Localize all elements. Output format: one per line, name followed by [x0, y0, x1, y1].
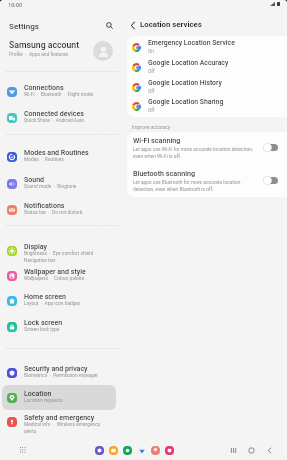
button[interactable]: Home screen	[2, 288, 116, 313]
button[interactable]: Toggle	[263, 143, 278, 152]
staticText: Medical info · Wireless emergency alerts	[24, 422, 100, 434]
staticText: Lock screen	[24, 318, 63, 326]
button[interactable]: Search	[101, 17, 117, 33]
staticText: Wallpaper and style	[24, 267, 86, 275]
button[interactable]: Notifications	[2, 197, 116, 222]
staticText: Emergency Location Service	[148, 39, 235, 47]
staticText: Off	[148, 69, 155, 75]
staticText: Status bar · Do not disturb	[24, 210, 83, 216]
staticText: Modes and Routines	[24, 148, 89, 156]
staticText: Brightness · Eye comfort shield · Naviga…	[24, 251, 97, 263]
staticText: Wi-Fi · Bluetooth · Flight mode	[24, 92, 94, 98]
staticText: Settings	[9, 21, 39, 30]
staticText: Display	[24, 242, 48, 250]
button[interactable]: Samsung account	[0, 36, 118, 62]
button[interactable]: Google Location History	[127, 76, 287, 96]
button[interactable]: Connections	[2, 79, 116, 104]
staticText: Security and privacy	[24, 364, 88, 372]
button[interactable]	[95, 446, 104, 455]
staticText: Sound mode · Ringtone	[24, 184, 77, 190]
staticText: On	[148, 49, 155, 55]
button[interactable]: Back	[264, 445, 274, 455]
button[interactable]: Emergency Location Service	[127, 36, 287, 56]
staticText: Layout · App icon badges	[24, 301, 81, 307]
staticText: Google Location Accuracy	[148, 59, 229, 67]
staticText: Notifications	[24, 201, 65, 209]
staticText: Google Location Sharing	[148, 98, 224, 106]
button[interactable]: Back	[126, 18, 140, 32]
staticText: Location	[24, 389, 52, 397]
staticText: Screen lock type	[24, 327, 60, 333]
staticText: Sound	[24, 175, 45, 183]
staticText: Samsung account	[9, 40, 80, 50]
staticText: Off	[148, 89, 155, 95]
button[interactable]: Wallpaper and style	[2, 263, 116, 288]
button[interactable]: Wi-Fi scanning	[127, 132, 287, 165]
staticText: Location services	[140, 20, 202, 29]
button[interactable]: Home	[246, 445, 256, 455]
staticText: Wallpapers · Colour palette	[24, 276, 85, 282]
button[interactable]: Google Location Sharing	[127, 95, 287, 115]
staticText: Profile · Apps and features	[9, 52, 69, 58]
staticText: Google Location History	[148, 79, 222, 87]
staticText: Let apps use Wi-Fi for more accurate loc…	[133, 147, 253, 159]
button[interactable]: Sound	[2, 171, 116, 196]
button[interactable]: Recents	[228, 445, 238, 455]
button[interactable]: All apps	[17, 444, 29, 456]
staticText: Connections	[24, 83, 64, 91]
staticText: Home screen	[24, 292, 66, 300]
staticText: Bluetooth scanning	[133, 169, 196, 177]
button[interactable]: Modes and Routines	[2, 144, 116, 169]
button[interactable]	[165, 446, 174, 455]
button[interactable]	[123, 446, 132, 455]
staticText: 10:00	[8, 2, 23, 9]
button[interactable]: Location	[2, 385, 116, 410]
staticText: Biometrics · Permission manager	[24, 373, 98, 379]
staticText: Let apps use Bluetooth for more accurate…	[133, 180, 241, 192]
button[interactable]: Lock screen	[2, 314, 116, 339]
button[interactable]: Connected devices	[2, 105, 116, 130]
staticText: Off	[148, 108, 155, 114]
staticText: Connected devices	[24, 109, 84, 117]
staticText: Safety and emergency	[24, 413, 95, 421]
button[interactable]: Google Location Accuracy	[127, 56, 287, 76]
button[interactable]: Toggle	[263, 176, 278, 185]
staticText: Quick Share · Android Auto	[24, 118, 84, 124]
button[interactable]: Security and privacy	[2, 360, 116, 385]
staticText: Wi-Fi scanning	[133, 136, 181, 144]
button[interactable]	[109, 446, 118, 455]
button[interactable]	[137, 446, 146, 455]
button[interactable]	[151, 446, 160, 455]
staticText: Improve accuracy	[132, 125, 171, 131]
staticText: Location requests	[24, 398, 63, 404]
button[interactable]: Safety and emergency	[2, 409, 116, 434]
staticText: Modes · Routines	[24, 157, 64, 163]
button[interactable]: Display	[2, 238, 116, 263]
button[interactable]: Bluetooth scanning	[127, 165, 287, 197]
